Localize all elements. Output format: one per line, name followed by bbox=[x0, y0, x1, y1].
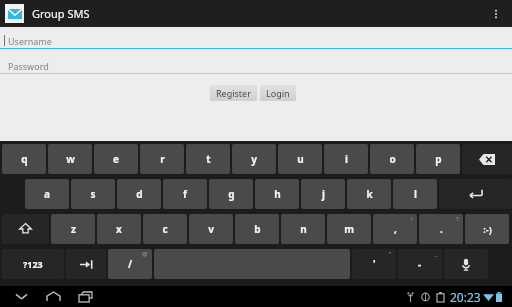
staticText: Register bbox=[216, 87, 251, 99]
staticText: / bbox=[128, 257, 133, 271]
staticText: o bbox=[389, 152, 396, 166]
button[interactable]: Recent apps bbox=[74, 286, 96, 307]
button[interactable]: ' bbox=[352, 249, 396, 279]
staticText: a bbox=[44, 187, 50, 201]
button[interactable]: u bbox=[278, 144, 322, 174]
button[interactable]: e bbox=[94, 144, 138, 174]
button[interactable]: k bbox=[347, 179, 391, 209]
button[interactable]: , bbox=[373, 214, 417, 244]
staticText: - bbox=[418, 257, 422, 271]
button[interactable]: j bbox=[301, 179, 345, 209]
button[interactable]: :-) bbox=[465, 214, 509, 244]
button[interactable]: m bbox=[327, 214, 371, 244]
staticText: :-) bbox=[483, 223, 492, 235]
button[interactable]: Tab bbox=[66, 249, 106, 279]
staticText: l bbox=[414, 187, 417, 201]
button[interactable]: p bbox=[416, 144, 460, 174]
button[interactable]: ?123 bbox=[2, 249, 64, 279]
staticText: p bbox=[435, 152, 442, 166]
staticText: i bbox=[345, 152, 348, 166]
staticText: j bbox=[322, 187, 325, 201]
button[interactable]: d bbox=[117, 179, 161, 209]
button[interactable]: o bbox=[370, 144, 414, 174]
staticText: u bbox=[297, 152, 304, 166]
staticText: _ bbox=[435, 250, 438, 258]
staticText: e bbox=[113, 152, 119, 166]
staticText: Login bbox=[266, 87, 290, 99]
staticText: c bbox=[162, 222, 168, 236]
staticText: . bbox=[440, 222, 443, 236]
button[interactable]: Voice input bbox=[444, 249, 488, 279]
button[interactable]: a bbox=[25, 179, 69, 209]
staticText: m bbox=[344, 222, 354, 236]
button[interactable]: Hide keyboard bbox=[10, 286, 32, 307]
staticText: k bbox=[366, 187, 373, 201]
button[interactable]: More options bbox=[486, 4, 506, 24]
staticText: n bbox=[300, 222, 307, 236]
button[interactable]: n bbox=[281, 214, 325, 244]
staticText: q bbox=[21, 152, 28, 166]
staticText: Group SMS bbox=[32, 6, 90, 21]
button[interactable]: w bbox=[48, 144, 92, 174]
button[interactable]: f bbox=[163, 179, 207, 209]
button[interactable]: i bbox=[324, 144, 368, 174]
button[interactable]: Login bbox=[260, 85, 296, 101]
button[interactable]: b bbox=[235, 214, 279, 244]
button[interactable]: t bbox=[186, 144, 230, 174]
button[interactable]: x bbox=[97, 214, 141, 244]
staticText: ?123 bbox=[23, 258, 43, 270]
staticText: ? bbox=[456, 215, 459, 223]
button[interactable]: Password bbox=[0, 57, 512, 74]
staticText: 20:23 bbox=[450, 289, 481, 305]
staticText: x bbox=[116, 222, 122, 236]
button[interactable]: l bbox=[393, 179, 437, 209]
staticText: Password bbox=[8, 60, 49, 72]
staticText: v bbox=[208, 222, 214, 236]
button[interactable]: g bbox=[209, 179, 253, 209]
button[interactable]: Register bbox=[210, 85, 257, 101]
button[interactable]: z bbox=[51, 214, 95, 244]
staticText: s bbox=[90, 187, 96, 201]
staticText: t bbox=[206, 152, 211, 166]
staticText: g bbox=[228, 187, 235, 201]
button[interactable]: v bbox=[189, 214, 233, 244]
staticText: w bbox=[66, 152, 75, 166]
button[interactable]: Home bbox=[42, 286, 64, 307]
button[interactable]: Enter bbox=[439, 179, 512, 209]
staticText: b bbox=[254, 222, 261, 236]
button[interactable]: Backspace bbox=[462, 144, 512, 174]
staticText: f bbox=[183, 187, 187, 201]
button[interactable]: . bbox=[419, 214, 463, 244]
button[interactable]: c bbox=[143, 214, 187, 244]
staticText: d bbox=[136, 187, 143, 201]
button[interactable]: r bbox=[140, 144, 184, 174]
button[interactable]: Shift bbox=[2, 214, 49, 244]
button[interactable]: Username bbox=[0, 32, 512, 49]
button[interactable]: - bbox=[398, 249, 442, 279]
button[interactable]: h bbox=[255, 179, 299, 209]
staticText: @ bbox=[142, 250, 148, 258]
staticText: y bbox=[251, 152, 257, 166]
button[interactable]: / bbox=[108, 249, 152, 279]
staticText: " bbox=[389, 250, 392, 258]
staticText: ' bbox=[373, 257, 376, 271]
button[interactable]: q bbox=[2, 144, 46, 174]
button[interactable]: s bbox=[71, 179, 115, 209]
staticText: Username bbox=[8, 35, 52, 47]
staticText: z bbox=[71, 222, 76, 236]
staticText: ! bbox=[411, 215, 413, 223]
button[interactable]: y bbox=[232, 144, 276, 174]
staticText: r bbox=[160, 152, 165, 166]
staticText: h bbox=[274, 187, 281, 201]
staticText: , bbox=[394, 222, 397, 236]
